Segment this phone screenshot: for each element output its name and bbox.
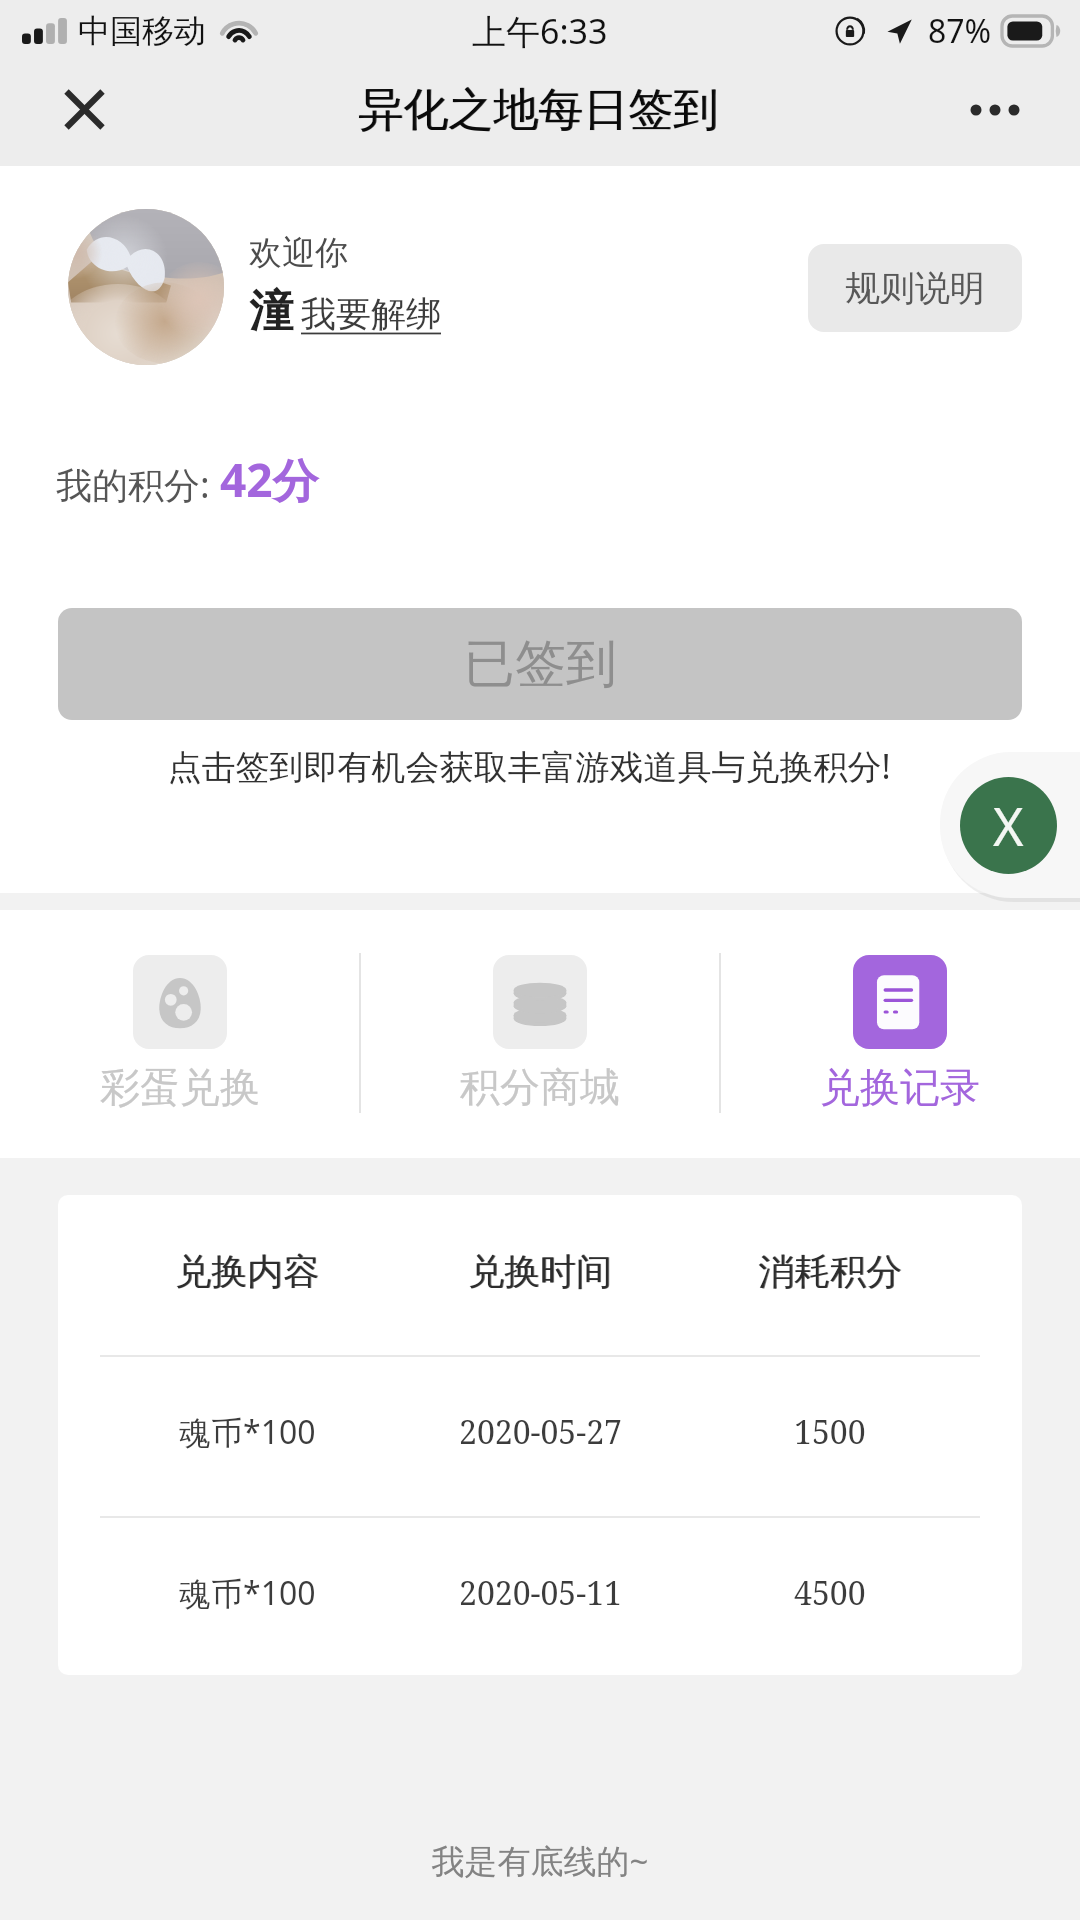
staticText: 消耗积分 [759,1249,903,1294]
button[interactable]: More options [964,76,1048,144]
staticText: 积分商城 [460,1062,620,1112]
staticText: 我要解绑 [301,292,441,336]
staticText: 我是有底线的~ [0,1838,1080,1883]
button[interactable]: Close mini program [940,752,1080,898]
button[interactable]: 规则说明 [808,244,1022,332]
button[interactable]: 积分商城 [360,910,720,1158]
staticText: 42分 [220,448,319,511]
staticText: 异化之地每日签到 [359,82,719,139]
button[interactable]: Close [43,68,126,151]
staticText: 上午6:33 [472,8,608,54]
staticText: 点击签到即有机会获取丰富游戏道具与兑换积分! [0,743,1069,789]
staticText: X [993,790,1024,861]
staticText: 魂币*100 [179,1410,316,1454]
staticText: 2020-05-27 [459,1410,622,1454]
button[interactable]: 兑换记录 [720,910,1080,1158]
staticText: 兑换时间 [468,1249,612,1294]
staticText: 规则说明 [845,266,985,310]
staticText: 兑换记录 [820,1062,980,1112]
button[interactable]: 我要解绑 [301,292,441,336]
staticText: 2020-05-11 [459,1571,622,1615]
staticText: 兑换内容 [175,1249,319,1294]
staticText: 魂币*100 [179,1571,316,1615]
staticText: 4500 [794,1571,866,1615]
staticText: 中国移动 [78,11,206,51]
staticText: 已签到 [464,632,617,696]
button[interactable]: 彩蛋兑换 [0,910,360,1158]
staticText: 欢迎你 [249,232,348,274]
button[interactable]: 已签到 [58,608,1022,720]
staticText: 潼 [249,284,293,339]
staticText: 彩蛋兑换 [100,1062,260,1112]
staticText: 87% [928,9,992,53]
staticText: 兑换时间 [469,1249,613,1294]
staticText: 异化之地每日签到 [358,82,718,139]
staticText: 我的积分: [56,460,220,509]
staticText: 1500 [794,1410,866,1454]
staticText: 兑换内容 [176,1249,320,1294]
staticText: 消耗积分 [758,1249,902,1294]
